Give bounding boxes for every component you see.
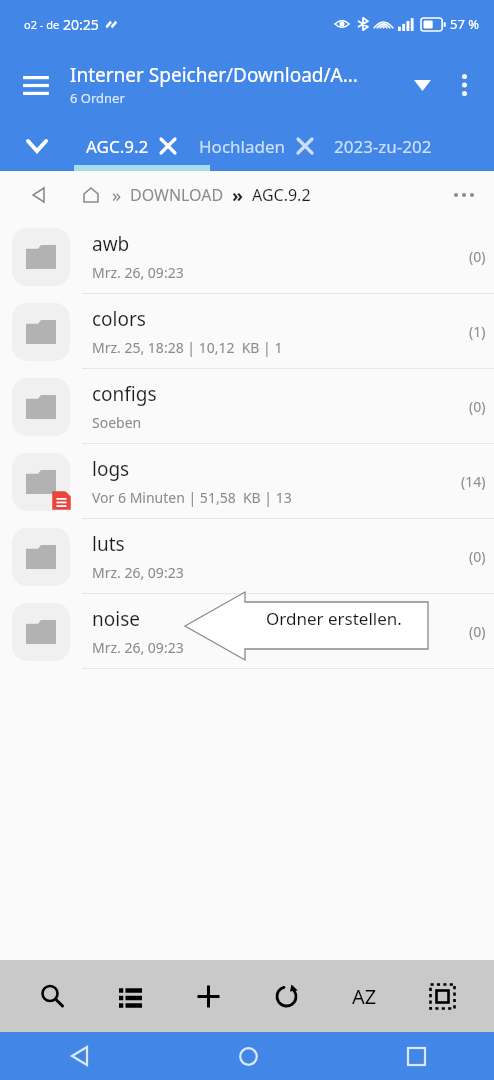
button[interactable]: Recents	[392, 1032, 440, 1080]
staticText: Mrz. 26, 09:23	[92, 563, 184, 582]
staticText: awb	[92, 231, 130, 257]
button[interactable]: Select all	[416, 970, 468, 1022]
button[interactable]: Menu	[12, 61, 60, 109]
button[interactable]: AGC.9.2	[74, 121, 187, 171]
staticText: Mrz. 25, 18:28 | 10,12 KB | 1	[92, 338, 283, 357]
staticText: noise	[92, 606, 140, 632]
staticText: luts	[92, 531, 125, 557]
button[interactable]: 2023-zu-202	[324, 135, 442, 158]
button[interactable]: AZ	[338, 970, 390, 1022]
button[interactable]: Home	[224, 1032, 272, 1080]
staticText: Mrz. 26, 09:23	[92, 638, 184, 657]
staticText: Mrz. 26, 09:23	[92, 263, 184, 282]
staticText: AGC.9.2	[252, 184, 311, 206]
button[interactable]: Hochladen	[187, 121, 324, 171]
button[interactable]: Back	[55, 1032, 103, 1080]
staticText: (0)	[469, 547, 486, 566]
staticText: (0)	[469, 622, 486, 641]
button[interactable]: Add	[182, 970, 234, 1022]
staticText: 57 %	[450, 15, 480, 33]
staticText: configs	[92, 381, 157, 407]
staticText: Interner Speicher/Download/A...	[70, 62, 358, 88]
staticText: logs	[92, 456, 130, 482]
staticText: DOWNLOAD	[130, 184, 224, 206]
button[interactable]: logs	[0, 444, 494, 519]
button[interactable]: More	[444, 175, 484, 215]
staticText: Ordner erstellen.	[266, 607, 402, 630]
staticText: (0)	[469, 397, 486, 416]
button[interactable]: More options	[442, 63, 486, 107]
staticText: 2023-zu-202	[334, 135, 432, 158]
staticText: »	[112, 183, 122, 208]
staticText: (14)	[461, 472, 486, 491]
button[interactable]: Search	[26, 970, 78, 1022]
button[interactable]: Show tabs	[14, 123, 60, 169]
staticText: AZ	[352, 983, 377, 1010]
staticText: Vor 6 Minuten | 51,58 KB | 13	[92, 488, 292, 507]
staticText: 20:25	[63, 15, 99, 34]
staticText: (0)	[469, 247, 486, 266]
staticText: 6 Ordner	[70, 89, 125, 107]
button[interactable]: Expand path	[400, 63, 444, 107]
staticText: Soeben	[92, 413, 142, 432]
button[interactable]: Refresh	[260, 970, 312, 1022]
staticText: »	[232, 183, 244, 208]
staticText: AGC.9.2	[86, 135, 149, 158]
button[interactable]: Home	[76, 180, 106, 210]
staticText: o2 - de	[24, 17, 63, 32]
button[interactable]: colors	[0, 294, 494, 369]
button[interactable]: DOWNLOAD	[130, 184, 224, 206]
staticText: Hochladen	[199, 135, 286, 158]
button[interactable]: AGC.9.2	[252, 184, 311, 206]
button[interactable]: awb	[0, 219, 494, 294]
button[interactable]: configs	[0, 369, 494, 444]
button[interactable]: noise	[0, 594, 494, 669]
button[interactable]: Back	[22, 179, 54, 211]
staticText: (1)	[469, 322, 486, 341]
button[interactable]: List view	[104, 970, 156, 1022]
staticText: colors	[92, 306, 146, 332]
button[interactable]: luts	[0, 519, 494, 594]
